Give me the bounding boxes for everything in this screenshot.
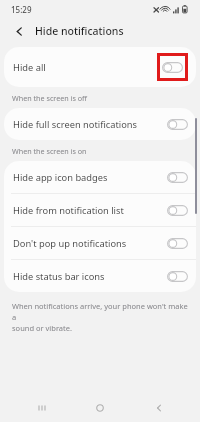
button[interactable]: Hide status bar icons <box>4 260 196 292</box>
staticText: Hide all <box>13 61 157 74</box>
staticText: When the screen is on <box>12 146 87 156</box>
staticText: 15:29 <box>11 4 32 15</box>
button[interactable]: Hide full screen notifications <box>4 108 196 140</box>
staticText: Hide from notification list <box>13 204 167 217</box>
button[interactable]: Back <box>142 396 176 420</box>
button[interactable]: Recents <box>25 396 59 420</box>
button[interactable]: Hide all <box>4 47 196 87</box>
button[interactable]: Don't pop up notifications <box>4 227 196 259</box>
staticText: Don't pop up notifications <box>13 237 167 250</box>
staticText: Hide app icon badges <box>13 171 167 184</box>
button[interactable]: Toggle off <box>167 119 188 130</box>
button[interactable]: Toggle off <box>167 205 188 216</box>
staticText: Hide full screen notifications <box>13 118 167 131</box>
staticText: When the screen is off <box>12 93 88 103</box>
button[interactable]: Toggle off <box>162 62 183 73</box>
button[interactable]: Toggle off <box>167 238 188 249</box>
button[interactable]: Toggle off <box>167 271 188 282</box>
staticText: Hide notifications <box>35 24 124 38</box>
staticText: Hide status bar icons <box>13 270 167 283</box>
button[interactable]: Back <box>9 21 29 41</box>
button[interactable]: Home <box>83 396 117 420</box>
button[interactable]: Hide from notification list <box>4 194 196 226</box>
button[interactable]: Toggle off <box>167 172 188 183</box>
button[interactable]: Hide app icon badges <box>4 161 196 193</box>
staticText: When notifications arrive, your phone wo… <box>12 301 188 333</box>
